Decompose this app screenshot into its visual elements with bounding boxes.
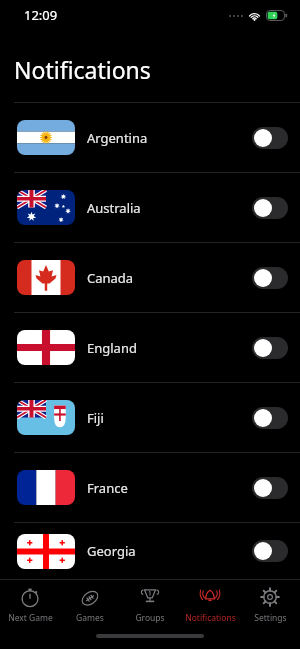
button[interactable]: Settings [240, 580, 300, 628]
staticText: Notifications [185, 612, 236, 624]
staticText: 12:09 [24, 6, 58, 24]
button[interactable]: Canada [0, 243, 300, 313]
staticText: Notifications [14, 54, 151, 85]
staticText: Games [76, 612, 104, 624]
button[interactable]: England [0, 313, 300, 383]
button[interactable]: Australia [0, 173, 300, 243]
button[interactable]: Toggle France notifications [252, 477, 288, 499]
staticText: France [87, 479, 252, 497]
staticText: Australia [87, 199, 252, 217]
button[interactable]: Georgia [0, 523, 300, 579]
button[interactable]: Next Game [0, 580, 60, 628]
button[interactable]: Toggle Canada notifications [252, 267, 288, 289]
button[interactable]: Toggle Georgia notifications [252, 540, 288, 562]
button[interactable]: Notifications [180, 580, 240, 628]
button[interactable]: Argentina [0, 103, 300, 173]
staticText: England [87, 339, 252, 357]
staticText: Argentina [87, 129, 252, 147]
staticText: Canada [87, 269, 252, 287]
staticText: Georgia [87, 542, 252, 560]
button[interactable]: Toggle Fiji notifications [252, 407, 288, 429]
button[interactable]: Toggle Argentina notifications [252, 127, 288, 149]
staticText: Settings [254, 612, 287, 624]
button[interactable]: Games [60, 580, 120, 628]
button[interactable]: Toggle England notifications [252, 337, 288, 359]
button[interactable]: Fiji [0, 383, 300, 453]
staticText: Next Game [8, 612, 53, 624]
staticText: Groups [135, 612, 165, 624]
staticText: Fiji [87, 409, 252, 427]
button[interactable]: Toggle Australia notifications [252, 197, 288, 219]
button[interactable]: France [0, 453, 300, 523]
button[interactable]: Groups [120, 580, 180, 628]
